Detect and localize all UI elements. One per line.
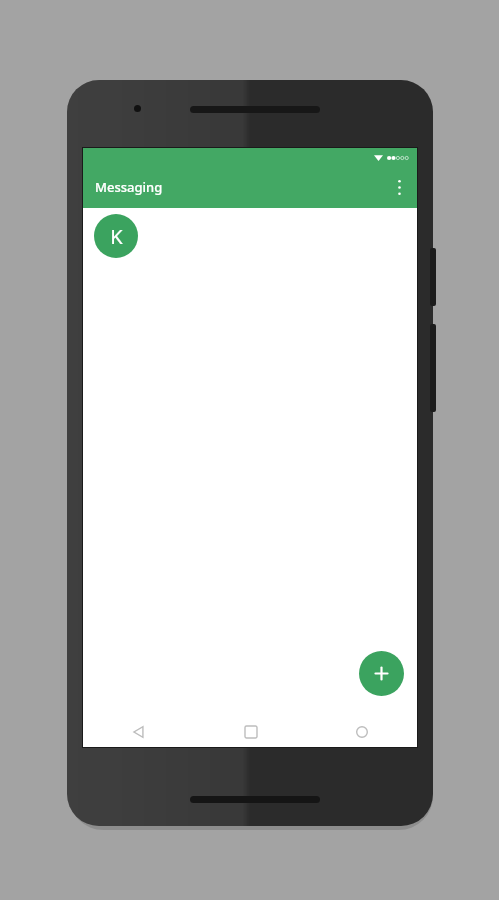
button[interactable]: Home	[195, 717, 306, 747]
button[interactable]: Recent apps	[306, 717, 417, 747]
button[interactable]: New conversation	[359, 651, 404, 696]
staticText: K	[110, 223, 123, 250]
button[interactable]: More options	[381, 169, 417, 205]
button[interactable]: Back	[83, 717, 195, 747]
staticText: Messaging	[95, 178, 163, 196]
button[interactable]: K	[83, 208, 417, 264]
